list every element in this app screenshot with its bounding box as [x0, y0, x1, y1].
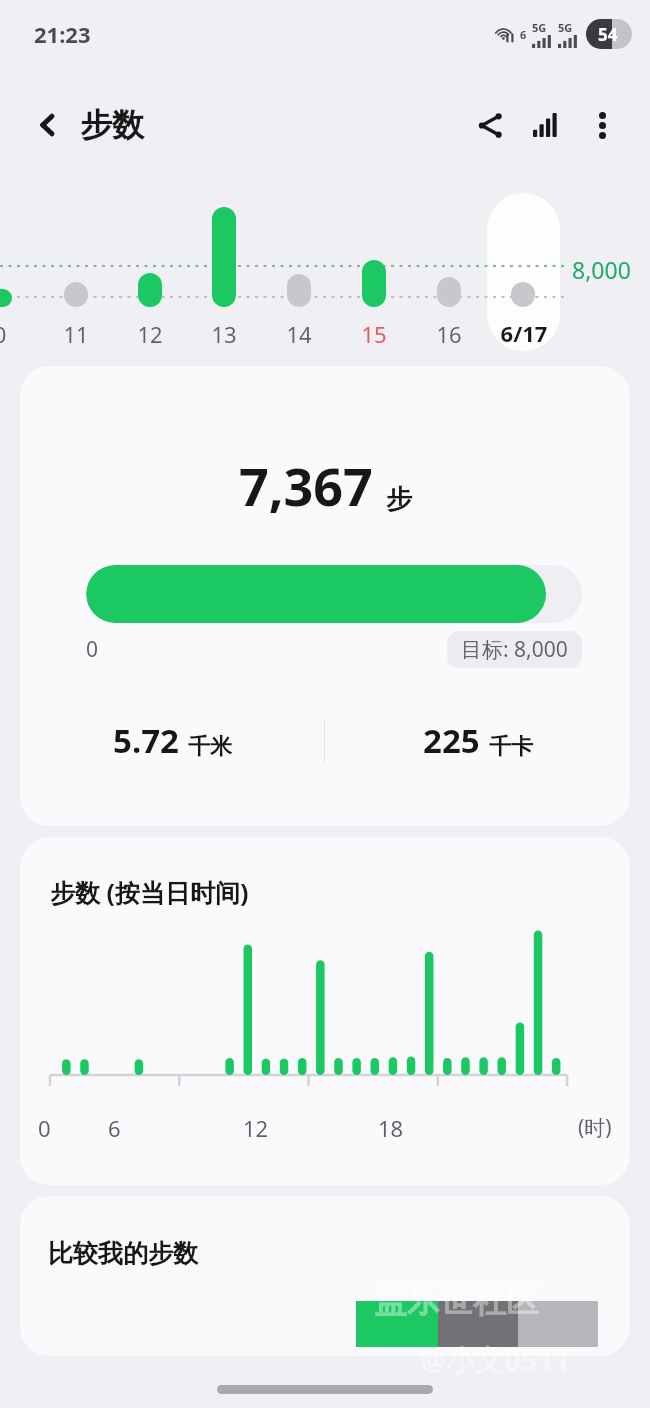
staticText: 5G [558, 20, 573, 35]
staticText: 步数 (按当日时间) [50, 875, 249, 909]
button[interactable]: 比较我的步数 [20, 1196, 630, 1356]
staticText: 盖乐世社区 [374, 1280, 539, 1322]
staticText: 步数 [80, 105, 144, 145]
staticText: 14 [285, 319, 313, 349]
staticText: 54 [598, 23, 618, 46]
button[interactable]: 7,367 [20, 366, 630, 826]
staticText: 16 [435, 319, 463, 349]
staticText: 6 [520, 27, 527, 42]
button[interactable]: More options [574, 97, 630, 153]
staticText: 千米 [188, 733, 232, 761]
staticText: 12 [136, 319, 164, 349]
button[interactable]: Share [462, 97, 518, 153]
button[interactable] [487, 193, 560, 351]
button[interactable]: 225 [325, 718, 630, 763]
staticText: 0 [0, 319, 14, 349]
button[interactable]: Back [24, 101, 72, 149]
staticText: 0 [86, 635, 99, 664]
staticText: 0 [38, 1113, 108, 1143]
button[interactable]: 步数 (按当日时间) [20, 837, 630, 1185]
staticText: 21:23 [34, 19, 91, 49]
staticText: 225 [423, 718, 480, 763]
staticText: (时) [578, 1113, 612, 1142]
staticText: 5.72 [113, 718, 179, 763]
button[interactable]: 5.72 [20, 718, 324, 763]
staticText: 目标: 8,000 [461, 635, 568, 664]
staticText: 13 [210, 319, 238, 349]
staticText: 步 [386, 483, 412, 516]
staticText: 千卡 [489, 733, 533, 761]
staticText: 8,000 [572, 254, 631, 285]
staticText: 15 [360, 319, 388, 349]
staticText: 11 [62, 319, 90, 349]
staticText: 12 [243, 1113, 378, 1143]
staticText: 比较我的步数 [48, 1238, 198, 1269]
staticText: @小文0511 [420, 1340, 571, 1380]
button[interactable]: Chart [518, 97, 574, 153]
staticText: 6 [108, 1113, 243, 1143]
staticText: 7,367 [239, 450, 373, 521]
staticText: 6/17 [492, 318, 556, 348]
staticText: 5G [532, 20, 547, 35]
staticText: 18 [378, 1113, 513, 1143]
